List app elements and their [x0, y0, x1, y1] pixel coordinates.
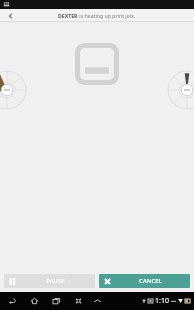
button[interactable]: Notification	[3, 1, 10, 8]
staticText: CANCEL	[139, 277, 162, 285]
button[interactable]: Show notifications	[92, 296, 102, 306]
button[interactable]: Back	[6, 295, 18, 307]
button[interactable]: Screenshot	[72, 295, 84, 307]
staticText: is heating up print jets.	[78, 12, 136, 19]
button[interactable]: Recent apps	[50, 295, 62, 307]
button[interactable]: Ink level	[0, 70, 27, 110]
button[interactable]: CANCEL	[99, 274, 190, 288]
button[interactable]: Paper level	[167, 70, 194, 110]
staticText: 1:10	[155, 296, 169, 306]
button[interactable]: Home	[28, 295, 40, 307]
staticText: PAUSE	[46, 277, 65, 285]
button[interactable]: PAUSE	[4, 274, 95, 288]
staticText: DEXTER	[58, 12, 78, 19]
button[interactable]: System status	[142, 296, 191, 306]
button[interactable]: Back	[6, 11, 15, 20]
